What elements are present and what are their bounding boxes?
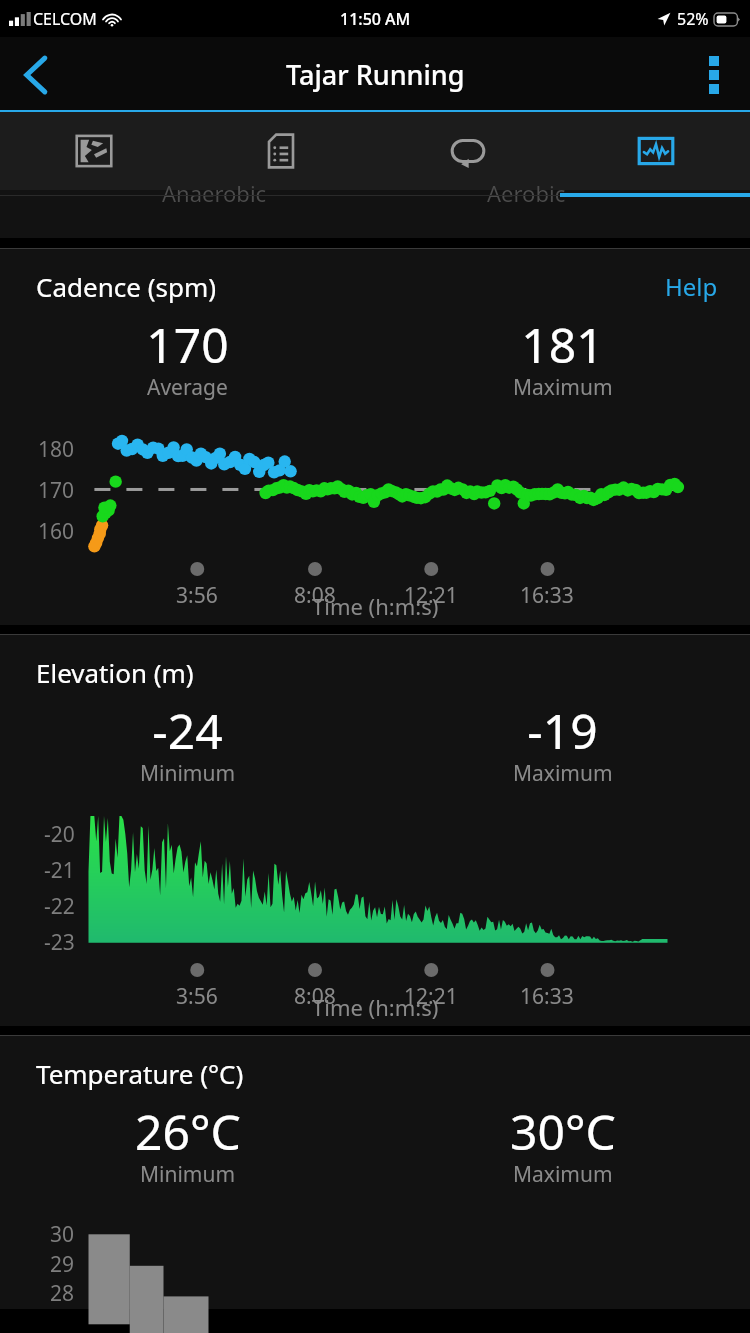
staticText: Maximum bbox=[513, 759, 613, 788]
staticText: Tajar Running bbox=[286, 56, 465, 93]
button[interactable]: Help bbox=[665, 270, 718, 303]
button[interactable]: Map bbox=[0, 112, 187, 190]
staticText: Time (h:m:s) bbox=[312, 591, 439, 621]
staticText: 8:08 bbox=[294, 982, 336, 1011]
staticText: 3:56 bbox=[176, 581, 218, 610]
staticText: 29 bbox=[50, 1250, 75, 1279]
staticText: Minimum bbox=[140, 759, 236, 788]
staticText: Cadence (spm) bbox=[36, 269, 216, 304]
staticText: 160 bbox=[38, 517, 75, 546]
staticText: -24 bbox=[152, 698, 223, 763]
staticText: Anaerobic bbox=[162, 178, 267, 208]
staticText: 181 bbox=[521, 312, 604, 377]
staticText: Time (h:m:s) bbox=[312, 992, 439, 1022]
staticText: 170 bbox=[146, 312, 229, 377]
staticText: 52% bbox=[677, 8, 709, 30]
staticText: 8:08 bbox=[294, 581, 336, 610]
staticText: Temperature (°C) bbox=[36, 1056, 244, 1091]
staticText: Aerobic bbox=[487, 178, 566, 208]
staticText: -20 bbox=[44, 820, 75, 849]
staticText: 180 bbox=[38, 435, 75, 464]
staticText: -21 bbox=[44, 856, 75, 885]
staticText: 30 bbox=[50, 1220, 75, 1249]
staticText: Maximum bbox=[513, 1160, 613, 1189]
staticText: Help bbox=[665, 270, 718, 303]
staticText: CELCOM bbox=[33, 8, 97, 30]
button[interactable]: More options bbox=[678, 39, 750, 111]
staticText: Elevation (m) bbox=[36, 655, 194, 690]
staticText: Minimum bbox=[140, 1160, 236, 1189]
staticText: 28 bbox=[50, 1279, 75, 1308]
staticText: Maximum bbox=[513, 373, 613, 402]
staticText: 30°C bbox=[510, 1099, 616, 1164]
staticText: Average bbox=[147, 373, 228, 402]
staticText: 16:33 bbox=[520, 982, 574, 1011]
button[interactable]: Details bbox=[187, 112, 374, 190]
button[interactable]: Charts bbox=[562, 112, 750, 190]
staticText: -19 bbox=[527, 698, 598, 763]
staticText: -22 bbox=[44, 892, 75, 921]
staticText: 170 bbox=[38, 476, 75, 505]
staticText: 16:33 bbox=[520, 581, 574, 610]
staticText: -23 bbox=[44, 928, 75, 957]
button[interactable]: Back bbox=[0, 39, 72, 111]
staticText: 3:56 bbox=[176, 982, 218, 1011]
staticText: 26°C bbox=[135, 1099, 241, 1164]
staticText: 12:21 bbox=[404, 982, 458, 1011]
staticText: 11:50 AM bbox=[340, 8, 411, 30]
staticText: 12:21 bbox=[404, 581, 458, 610]
button[interactable]: Laps bbox=[374, 112, 562, 190]
